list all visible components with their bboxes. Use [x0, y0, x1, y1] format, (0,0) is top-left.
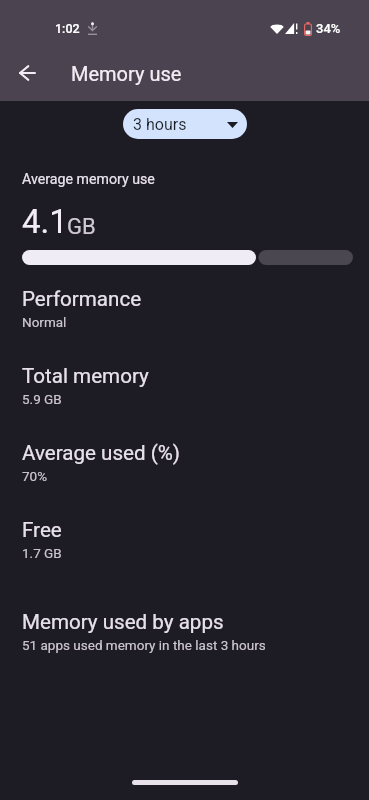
staticText: Normal	[22, 314, 67, 330]
staticText: Free	[22, 518, 62, 542]
staticText: 1.7 GB	[22, 545, 62, 561]
staticText: Memory use	[71, 62, 182, 85]
staticText: 34%	[316, 21, 341, 36]
staticText: Average used (%)	[22, 441, 180, 465]
button[interactable]: Total memory	[22, 364, 369, 441]
button[interactable]: Performance	[22, 287, 369, 364]
staticText: Total memory	[22, 364, 149, 388]
staticText: 4.1	[22, 202, 68, 241]
staticText: GB	[67, 214, 96, 240]
button[interactable]: Free	[22, 518, 369, 595]
staticText: 1:02	[55, 21, 80, 36]
staticText: 70%	[22, 468, 48, 484]
button[interactable]: Back	[3, 49, 51, 97]
staticText: Average memory use	[22, 171, 155, 188]
button[interactable]: Average used (%)	[22, 441, 369, 518]
staticText: Memory used by apps	[22, 610, 224, 634]
button[interactable]: Memory used by apps	[22, 610, 369, 653]
staticText: Performance	[22, 287, 142, 311]
staticText: 3 hours	[133, 115, 187, 134]
button[interactable]: 3 hours	[123, 109, 247, 139]
staticText: 5.9 GB	[22, 391, 62, 407]
staticText: 51 apps used memory in the last 3 hours	[22, 637, 266, 653]
